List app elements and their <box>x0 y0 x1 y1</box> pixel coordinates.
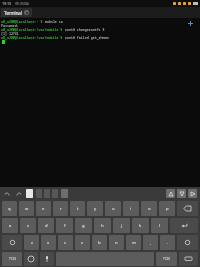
button[interactable]: x <box>41 235 56 250</box>
staticText: y <box>94 206 97 212</box>
button[interactable]: Right <box>188 189 197 198</box>
staticText: e <box>42 206 45 212</box>
staticText: v <box>81 240 84 246</box>
button[interactable]: b <box>92 235 107 250</box>
button[interactable]: q <box>2 201 17 216</box>
button[interactable]: z <box>24 235 39 250</box>
button[interactable]: c <box>58 235 73 250</box>
button[interactable]: Clipboard <box>26 189 33 198</box>
button[interactable]: f <box>56 218 73 233</box>
button[interactable]: Hide keyboard <box>179 252 198 266</box>
button[interactable]: Shift <box>177 235 198 250</box>
staticText: w <box>25 206 29 212</box>
staticText: i <box>130 206 132 212</box>
staticText: r <box>60 206 62 212</box>
staticText: q <box>8 206 11 212</box>
button[interactable]: ?123 <box>156 252 177 266</box>
staticText: u <box>112 206 115 212</box>
staticText: 19:15 <box>2 1 12 6</box>
button[interactable]: v <box>75 235 90 250</box>
staticText: p <box>166 206 169 212</box>
button[interactable]: h <box>94 218 111 233</box>
staticText: , <box>150 240 152 246</box>
button[interactable]: New session <box>187 20 194 27</box>
staticText: h <box>101 223 104 229</box>
button[interactable]: w <box>19 201 34 216</box>
button[interactable]: Voice input <box>40 252 54 266</box>
button[interactable]: Terminal <box>1 8 32 17</box>
button[interactable]: Redo <box>15 190 23 198</box>
staticText: ?123 <box>9 257 16 261</box>
staticText: u0_a200@localhost:~ $ <box>1 19 43 23</box>
button[interactable]: j <box>113 218 130 233</box>
button[interactable]: Enter <box>170 218 198 233</box>
button[interactable]: Shift <box>2 235 22 250</box>
button[interactable]: u <box>105 201 121 216</box>
staticText: z <box>31 240 33 246</box>
button[interactable]: n <box>109 235 124 250</box>
button[interactable]: g <box>75 218 92 233</box>
staticText: d <box>45 223 48 229</box>
button[interactable]: ?123 <box>2 252 22 266</box>
staticText: a <box>9 223 12 229</box>
button[interactable]: Close tab <box>24 10 29 15</box>
button[interactable]: a <box>2 218 18 233</box>
staticText: u0_a200@localhost:/var/mobile $ <box>1 27 63 31</box>
staticText: (RUN)(A) <box>15 1 30 6</box>
staticText: ?123 <box>163 257 170 261</box>
staticText: u0_a200@localhost:/var/mobile $ <box>1 35 63 39</box>
button[interactable]: y <box>87 201 103 216</box>
staticText: t <box>77 206 79 212</box>
button[interactable]: p <box>159 201 175 216</box>
staticText: Password: <box>1 23 19 27</box>
staticText: n <box>115 240 118 246</box>
staticText: m <box>132 240 136 246</box>
staticText: o <box>148 206 151 212</box>
staticText: [1] 12741 <box>1 31 19 35</box>
staticText: root# failed get_shmem <box>63 35 109 39</box>
staticText: f <box>64 223 66 229</box>
button[interactable]: Backspace <box>177 201 198 216</box>
button[interactable]: m <box>126 235 141 250</box>
button[interactable]: o <box>141 201 157 216</box>
button[interactable]: e <box>36 201 51 216</box>
staticText: g <box>82 223 85 229</box>
button[interactable]: Emoji <box>24 252 38 266</box>
button[interactable]: l <box>151 218 168 233</box>
button[interactable]: , <box>143 235 158 250</box>
button[interactable]: i <box>123 201 139 216</box>
staticText: root# changerootfs $ <box>63 27 105 31</box>
staticText: k <box>139 223 142 229</box>
staticText: s <box>27 223 30 229</box>
staticText: l <box>159 223 161 229</box>
button[interactable]: t <box>70 201 85 216</box>
staticText: mobile su <box>43 19 63 23</box>
staticText: Terminal <box>4 10 22 16</box>
staticText: c <box>64 240 67 246</box>
button[interactable]: k <box>132 218 149 233</box>
button[interactable]: Up <box>166 189 175 198</box>
button[interactable]: Undo <box>3 190 11 198</box>
staticText: b <box>98 240 101 246</box>
button[interactable]: r <box>53 201 68 216</box>
staticText: . <box>167 240 169 246</box>
button[interactable]: s <box>20 218 36 233</box>
button[interactable]: d <box>38 218 54 233</box>
staticText: j <box>121 223 123 229</box>
button[interactable]: . <box>160 235 175 250</box>
staticText: x <box>47 240 50 246</box>
button[interactable]: Down <box>177 189 186 198</box>
